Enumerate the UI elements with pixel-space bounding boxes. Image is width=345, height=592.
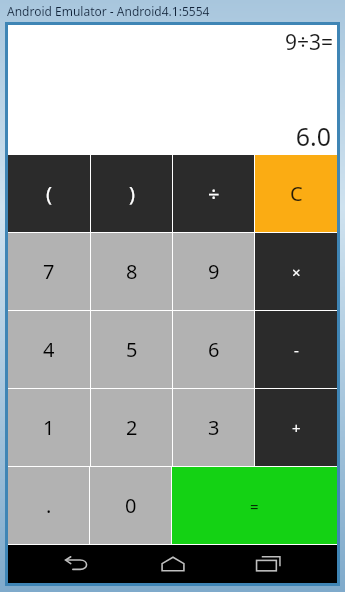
button[interactable]: 4 bbox=[8, 311, 90, 388]
button[interactable]: Home bbox=[146, 547, 200, 581]
button[interactable]: 7 bbox=[8, 233, 90, 310]
staticText: C bbox=[290, 180, 303, 207]
staticText: 7 bbox=[43, 258, 55, 285]
button[interactable]: × bbox=[255, 233, 337, 310]
button[interactable]: 1 bbox=[8, 389, 90, 466]
button[interactable]: 6 bbox=[173, 311, 254, 388]
button[interactable]: 8 bbox=[91, 233, 172, 310]
staticText: 5 bbox=[126, 336, 138, 363]
staticText: ÷ bbox=[208, 180, 220, 207]
button[interactable]: 5 bbox=[91, 311, 172, 388]
button[interactable]: ( bbox=[8, 155, 90, 232]
button[interactable]: - bbox=[255, 311, 337, 388]
staticText: - bbox=[294, 340, 299, 360]
staticText: 9 bbox=[208, 258, 220, 285]
button[interactable]: 3 bbox=[173, 389, 254, 466]
staticText: × bbox=[292, 262, 301, 282]
button[interactable]: . bbox=[8, 467, 89, 544]
staticText: 1 bbox=[43, 414, 55, 441]
button[interactable]: 9 bbox=[173, 233, 254, 310]
button[interactable]: C bbox=[255, 155, 337, 232]
staticText: = bbox=[250, 496, 259, 516]
button[interactable]: ) bbox=[91, 155, 172, 232]
button[interactable]: Recent apps bbox=[241, 547, 295, 581]
staticText: 9÷3= bbox=[284, 28, 333, 57]
staticText: Android Emulator - Android4.1:5554 bbox=[7, 3, 210, 19]
button[interactable]: Back bbox=[50, 547, 104, 581]
staticText: . bbox=[46, 492, 52, 519]
staticText: 0 bbox=[125, 492, 137, 519]
button[interactable]: = bbox=[172, 467, 337, 544]
staticText: ( bbox=[46, 180, 52, 207]
button[interactable]: + bbox=[255, 389, 337, 466]
staticText: + bbox=[292, 418, 301, 438]
button[interactable]: ÷ bbox=[173, 155, 254, 232]
staticText: 3 bbox=[208, 414, 220, 441]
staticText: 6 bbox=[208, 336, 220, 363]
staticText: ) bbox=[129, 180, 135, 207]
staticText: 4 bbox=[43, 336, 55, 363]
staticText: 8 bbox=[126, 258, 138, 285]
button[interactable]: 2 bbox=[91, 389, 172, 466]
staticText: 2 bbox=[126, 414, 138, 441]
button[interactable]: 0 bbox=[90, 467, 171, 544]
staticText: 6.0 bbox=[295, 119, 331, 153]
